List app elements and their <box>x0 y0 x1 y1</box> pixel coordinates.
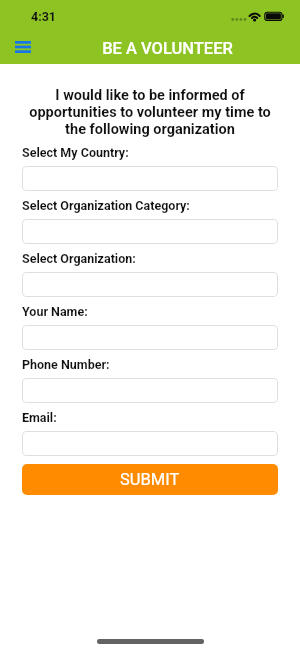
button[interactable] <box>22 166 278 191</box>
button[interactable] <box>22 325 278 350</box>
button[interactable]: Open navigation menu <box>9 33 37 61</box>
staticText: Select My Country: <box>22 145 129 160</box>
button[interactable]: SUBMIT <box>22 464 278 495</box>
staticText: BE A VOLUNTEER <box>35 39 300 58</box>
button[interactable] <box>22 378 278 403</box>
staticText: I would like to be informed of opportuni… <box>22 87 278 138</box>
staticText: Select Organization Category: <box>22 198 190 213</box>
button[interactable] <box>22 219 278 244</box>
staticText: Phone Number: <box>22 357 110 372</box>
button[interactable] <box>22 272 278 297</box>
staticText: SUBMIT <box>120 470 180 489</box>
button[interactable] <box>22 431 278 456</box>
staticText: Email: <box>22 410 57 425</box>
staticText: 4:31 <box>31 9 57 24</box>
staticText: Select Organization: <box>22 251 136 266</box>
staticText: Your Name: <box>22 304 88 319</box>
